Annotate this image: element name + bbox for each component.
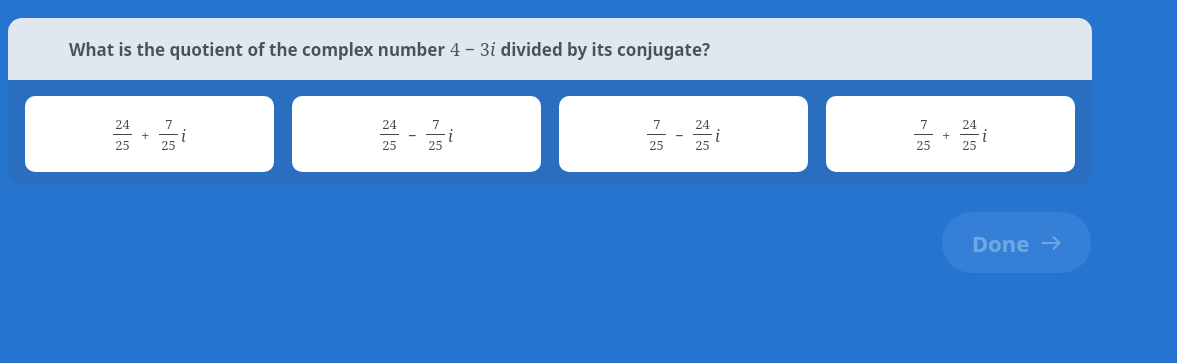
staticText: divided by its conjugate? [496,38,711,61]
staticText: Done [972,228,1030,258]
button[interactable]: 7 [559,96,808,172]
button[interactable]: Done [942,212,1091,273]
staticText: 25 [382,136,397,154]
staticText: i [715,125,720,147]
staticText: What is the quotient of the complex numb… [69,38,450,61]
staticText: 7 [432,115,440,133]
button[interactable]: 24 [25,96,274,172]
staticText: 25 [916,136,931,154]
staticText: − [408,125,417,145]
staticText: 7 [920,115,928,133]
staticText: 4 − 3 [450,37,490,62]
staticText: 25 [962,136,977,154]
button[interactable]: 24 [292,96,541,172]
staticText: + [942,125,951,145]
staticText: 24 [962,115,977,133]
staticText: − [675,125,684,145]
staticText: i [490,37,496,62]
staticText: i [982,125,987,147]
staticText: i [181,125,186,147]
staticText: i [448,125,453,147]
staticText: 25 [649,136,664,154]
other: Done [1040,232,1062,254]
staticText: 25 [115,136,130,154]
staticText: 24 [115,115,130,133]
staticText: 25 [695,136,710,154]
button[interactable]: 7 [826,96,1075,172]
staticText: 24 [382,115,397,133]
staticText: 25 [161,136,176,154]
staticText: 24 [695,115,710,133]
staticText: 25 [428,136,443,154]
staticText: + [141,125,150,145]
staticText: 7 [165,115,173,133]
staticText: 7 [653,115,661,133]
